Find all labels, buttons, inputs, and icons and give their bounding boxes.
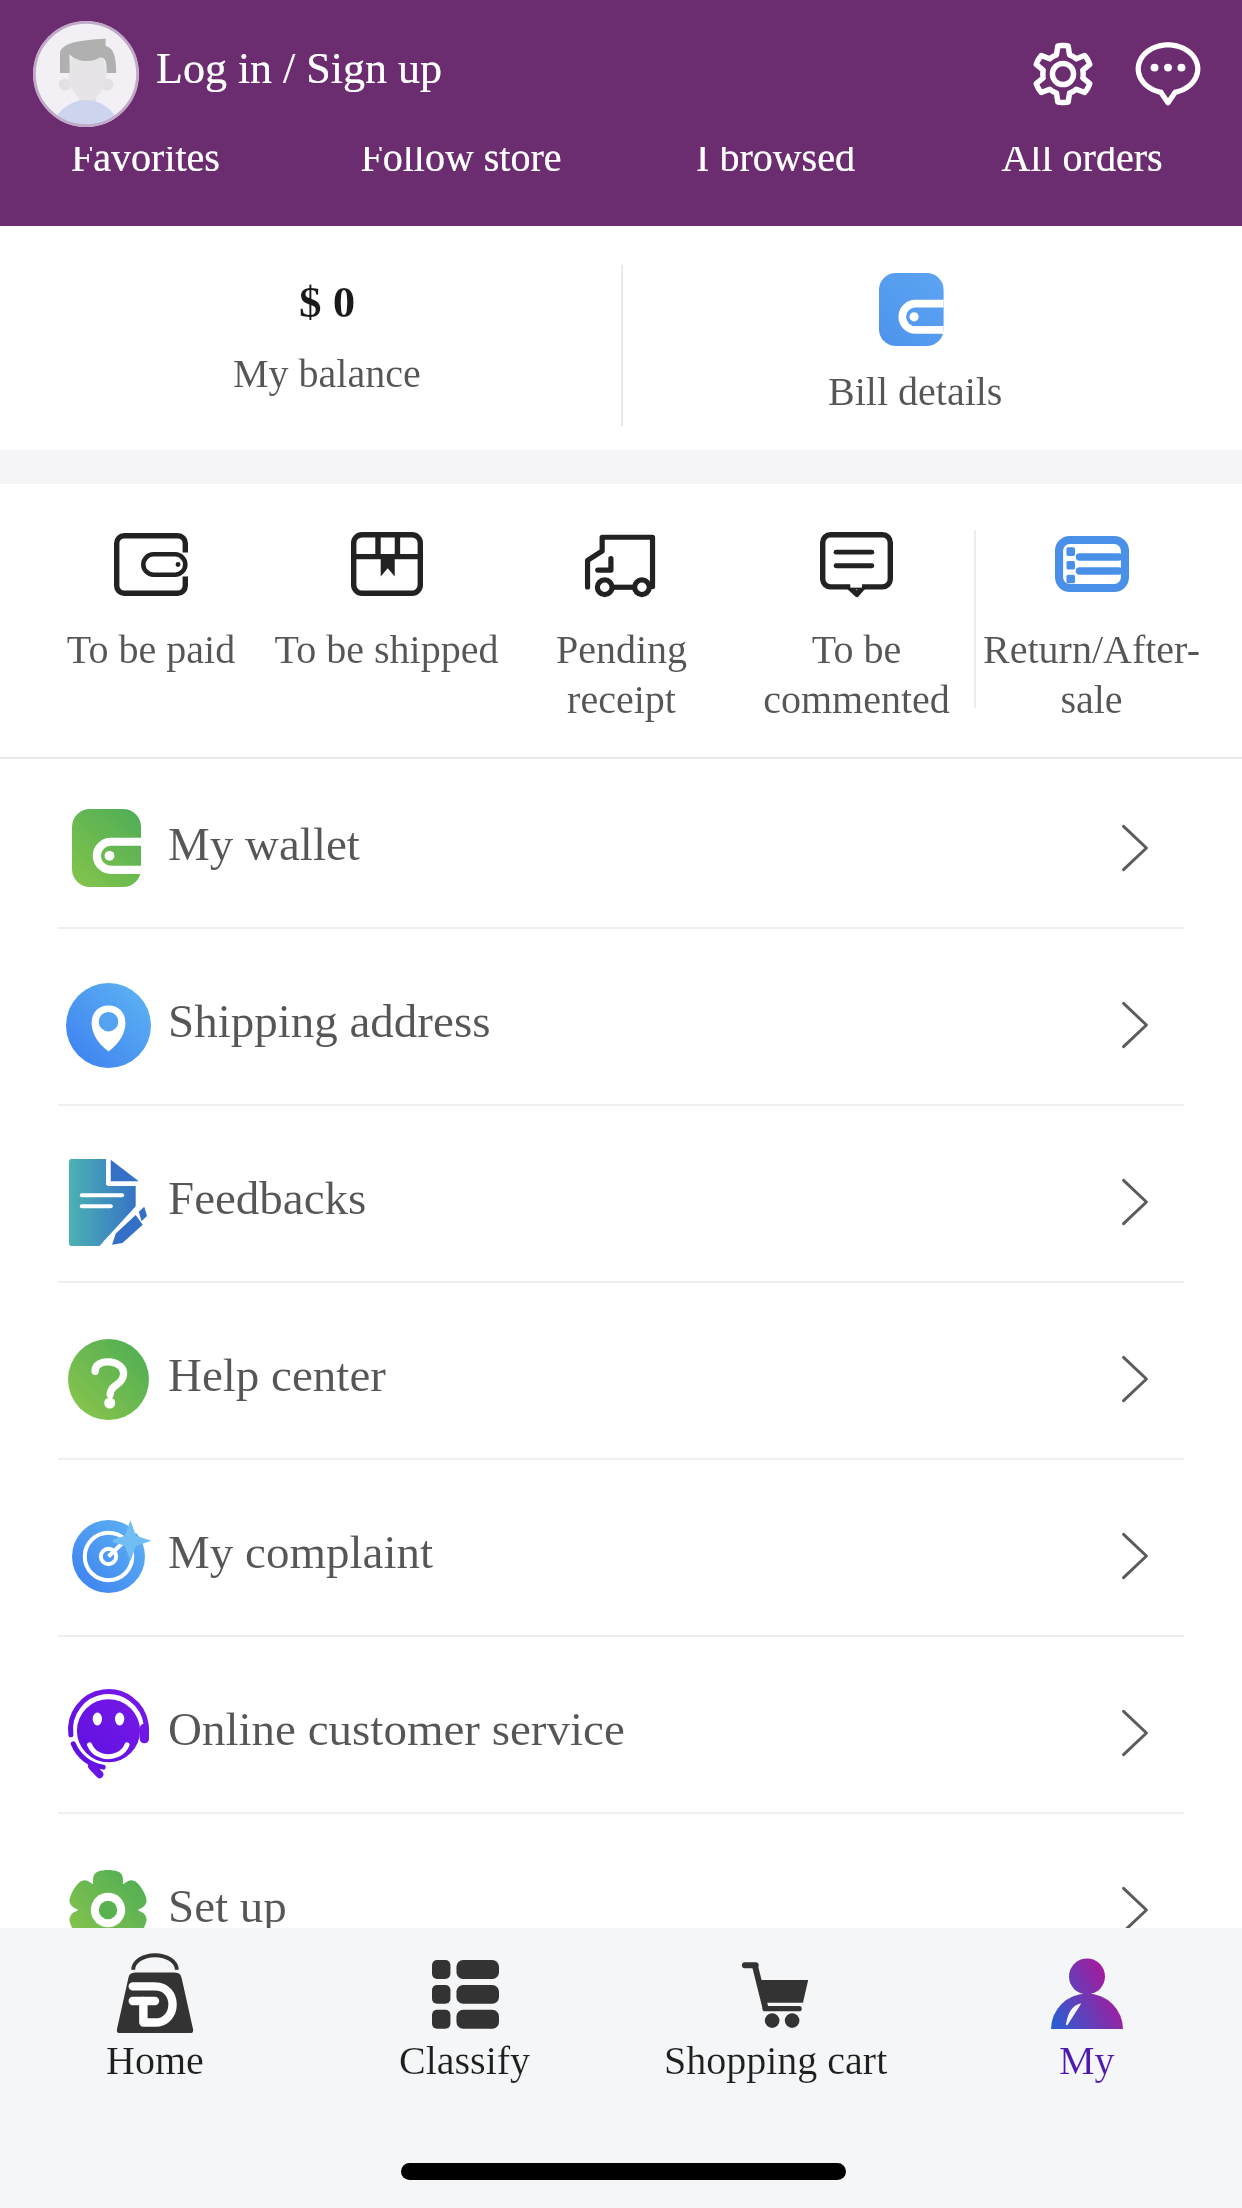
button[interactable]: Favorites xyxy=(0,134,303,180)
button[interactable]: I browsed xyxy=(618,134,933,180)
button[interactable]: Pending receipt xyxy=(504,484,739,759)
staticText: Bill details xyxy=(828,369,1003,413)
button[interactable]: My complaint xyxy=(0,1460,1242,1637)
button[interactable]: All orders xyxy=(933,134,1230,180)
staticText: To be shipped xyxy=(271,627,502,671)
staticText: I browsed xyxy=(696,135,855,179)
button[interactable]: Return/After-sale xyxy=(974,484,1209,759)
staticText: Feedbacks xyxy=(168,1172,1122,1224)
button[interactable]: Follow store xyxy=(303,134,618,180)
button[interactable]: Set up xyxy=(0,1814,1242,1991)
staticText: Pending receipt xyxy=(506,627,737,721)
button[interactable]: Log in / Sign up xyxy=(33,15,443,121)
staticText: Classify xyxy=(399,2038,531,2082)
button[interactable]: $ 0 xyxy=(33,226,621,450)
staticText: To be commented xyxy=(741,627,972,721)
button[interactable]: Messages xyxy=(1131,37,1205,111)
button[interactable]: Shipping address xyxy=(0,929,1242,1106)
staticText: My xyxy=(1059,2038,1115,2082)
button[interactable]: Settings xyxy=(1026,37,1100,111)
button[interactable]: Bill details xyxy=(621,226,1209,450)
button[interactable]: Shopping cart xyxy=(620,1954,931,2082)
staticText: To be paid xyxy=(35,627,267,671)
button[interactable]: Online customer service xyxy=(0,1637,1242,1814)
staticText: Follow store xyxy=(360,135,562,179)
staticText: Online customer service xyxy=(168,1703,1122,1755)
staticText: Favorites xyxy=(71,135,220,179)
staticText: Return/After-sale xyxy=(976,627,1207,721)
button[interactable]: To be shipped xyxy=(269,484,504,759)
button[interactable]: My xyxy=(931,1954,1242,2082)
button[interactable]: Feedbacks xyxy=(0,1106,1242,1283)
staticText: Home xyxy=(106,2038,204,2082)
staticText: Log in / Sign up xyxy=(156,44,443,93)
button[interactable]: To be paid xyxy=(33,484,269,759)
staticText: All orders xyxy=(1001,135,1163,179)
button[interactable]: Classify xyxy=(310,1954,620,2082)
staticText: Shipping address xyxy=(168,995,1122,1047)
button[interactable]: To be commented xyxy=(739,484,974,759)
staticText: Set up xyxy=(168,1880,1122,1932)
staticText: My balance xyxy=(233,351,421,395)
staticText: Help center xyxy=(168,1349,1122,1401)
staticText: Shopping cart xyxy=(664,2038,888,2082)
button[interactable]: My wallet xyxy=(0,752,1242,929)
button[interactable]: Home xyxy=(0,1954,310,2082)
staticText: My complaint xyxy=(168,1526,1122,1578)
button[interactable]: Help center xyxy=(0,1283,1242,1460)
staticText: $ 0 xyxy=(299,277,356,327)
staticText: My wallet xyxy=(168,818,1122,870)
